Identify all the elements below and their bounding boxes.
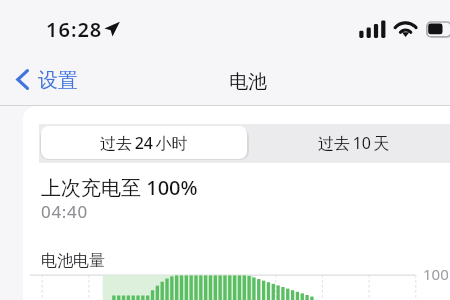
staticText: 电池电量 xyxy=(41,251,105,271)
other: Battery xyxy=(424,19,450,39)
button[interactable]: 设置 xyxy=(12,62,84,96)
staticText: 过去 10 天 xyxy=(318,132,390,154)
staticText: 16:28 xyxy=(46,16,103,43)
other: Wi-Fi xyxy=(392,18,420,40)
other: Cellular signal strength xyxy=(358,18,388,40)
staticText: 04:40 xyxy=(41,200,88,223)
button[interactable]: 过去 10 天 xyxy=(251,126,450,159)
staticText: 上次充电至 100% xyxy=(41,174,198,201)
staticText: 过去 24 小时 xyxy=(100,132,188,154)
staticText: 设置 xyxy=(38,68,78,93)
staticText: 电池 xyxy=(229,70,267,94)
button[interactable]: 过去 24 小时 xyxy=(41,126,247,159)
other: Location services active xyxy=(104,21,120,37)
staticText: 100 xyxy=(423,264,449,284)
